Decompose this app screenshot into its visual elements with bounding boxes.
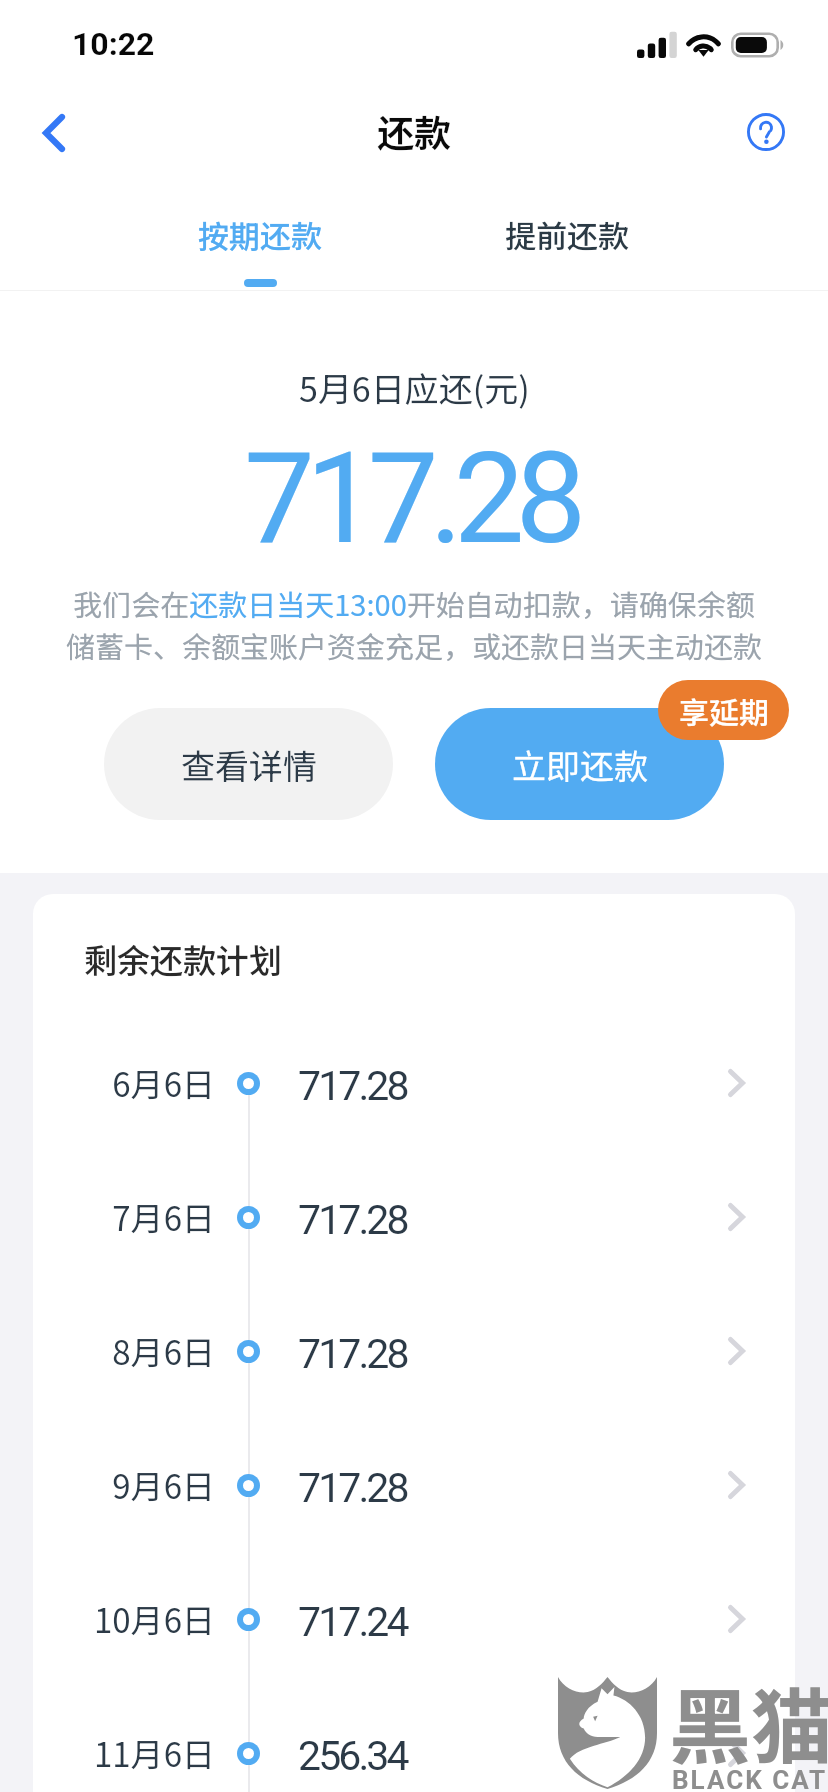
button[interactable]: 8月6日 xyxy=(33,1296,795,1406)
staticText: 剩余还款计划 xyxy=(84,935,282,983)
button[interactable]: 查看详情 xyxy=(104,708,393,820)
button[interactable]: 按期还款 xyxy=(130,212,390,304)
staticText: 还款 xyxy=(377,104,451,158)
staticText: 11月6日 xyxy=(33,1729,215,1777)
staticText: 我们会在还款日当天13:00开始自动扣款，请确保余额 储蓄卡、余额宝账户资金充足… xyxy=(34,582,794,666)
staticText: 享延期 xyxy=(679,689,769,732)
staticText: 10:22 xyxy=(72,25,155,63)
staticText: 6月6日 xyxy=(33,1059,215,1107)
button[interactable]: 7月6日 xyxy=(33,1162,795,1272)
staticText: 提前还款 xyxy=(505,212,629,257)
button[interactable]: Back xyxy=(8,88,99,178)
staticText: 7月6日 xyxy=(33,1193,215,1241)
staticText: 717.28 xyxy=(298,1330,407,1378)
staticText: 717.28 xyxy=(298,1062,407,1110)
button[interactable]: 享延期 xyxy=(658,680,789,740)
button[interactable]: 提前还款 xyxy=(437,212,697,304)
button[interactable]: Help xyxy=(721,87,811,177)
staticText: 717.24 xyxy=(298,1598,407,1646)
staticText: 256.34 xyxy=(298,1732,407,1780)
button[interactable]: 10月6日 xyxy=(33,1564,795,1674)
button[interactable]: 11月6日 xyxy=(33,1698,795,1792)
staticText: 10月6日 xyxy=(33,1595,215,1643)
staticText: 9月6日 xyxy=(33,1461,215,1509)
staticText: 717.28 xyxy=(298,1196,407,1244)
staticText: 717.28 xyxy=(298,1464,407,1512)
staticText: 717.28 xyxy=(244,425,578,573)
button[interactable]: 立即还款 xyxy=(435,708,724,820)
button[interactable]: 6月6日 xyxy=(33,1028,795,1138)
staticText: 立即还款 xyxy=(512,740,648,789)
button[interactable]: 9月6日 xyxy=(33,1430,795,1540)
staticText: 查看详情 xyxy=(181,740,317,789)
staticText: 8月6日 xyxy=(33,1327,215,1375)
staticText: 5月6日应还(元) xyxy=(299,363,530,412)
staticText: 按期还款 xyxy=(198,212,322,257)
staticText: 黑猫 xyxy=(669,1662,828,1781)
staticText: BLACK CAT xyxy=(672,1765,828,1792)
